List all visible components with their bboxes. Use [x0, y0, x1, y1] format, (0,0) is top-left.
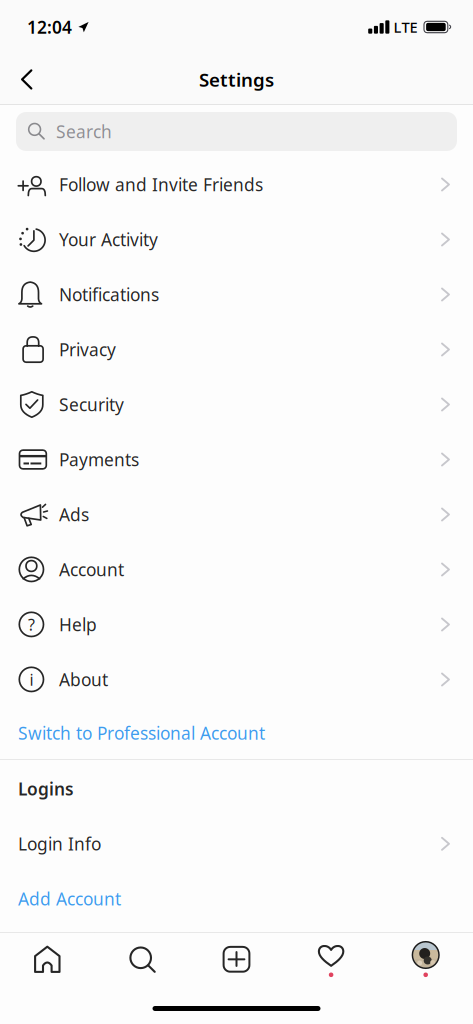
button[interactable]: i	[0, 652, 473, 707]
staticText: Payments	[59, 448, 139, 471]
button[interactable]: Ads	[0, 487, 473, 542]
button[interactable]: Switch to Professional Account	[0, 707, 473, 759]
staticText: Your Activity	[59, 228, 158, 251]
button[interactable]: Search	[0, 105, 473, 157]
button[interactable]: Login Info	[0, 818, 473, 870]
staticText: Help	[59, 613, 97, 636]
button[interactable]: Search	[95, 933, 189, 986]
staticText: Logins	[18, 777, 74, 800]
staticText: Notifications	[59, 283, 159, 306]
button[interactable]: Notifications	[0, 267, 473, 322]
button[interactable]: Your Activity	[0, 212, 473, 267]
button[interactable]: Add Account	[0, 870, 473, 928]
staticText: 12:04	[27, 15, 72, 38]
button[interactable]: Payments	[0, 432, 473, 487]
staticText: Login Info	[18, 832, 101, 855]
staticText: Switch to Professional Account	[18, 721, 265, 744]
staticText: i	[29, 669, 33, 690]
staticText: Add Account	[18, 887, 121, 910]
button[interactable]: Account	[0, 542, 473, 597]
staticText: ?	[28, 614, 35, 635]
staticText: Security	[59, 393, 124, 416]
button[interactable]: ?	[0, 597, 473, 652]
staticText: About	[59, 668, 108, 691]
staticText: Search	[56, 120, 112, 143]
button[interactable]: Privacy	[0, 322, 473, 377]
button[interactable]: Security	[0, 377, 473, 432]
staticText: Privacy	[59, 338, 116, 361]
button[interactable]: Back	[0, 54, 48, 105]
button[interactable]: Follow and Invite Friends	[0, 157, 473, 212]
button[interactable]: Create	[189, 933, 284, 986]
button[interactable]: Home	[0, 933, 95, 986]
button[interactable]: Profile	[378, 933, 473, 986]
staticText: Settings	[199, 67, 274, 92]
staticText: Follow and Invite Friends	[59, 173, 263, 196]
button[interactable]: Activity	[284, 933, 378, 986]
staticText: LTE	[393, 17, 417, 37]
staticText: Account	[59, 558, 124, 581]
staticText: Ads	[59, 503, 89, 526]
